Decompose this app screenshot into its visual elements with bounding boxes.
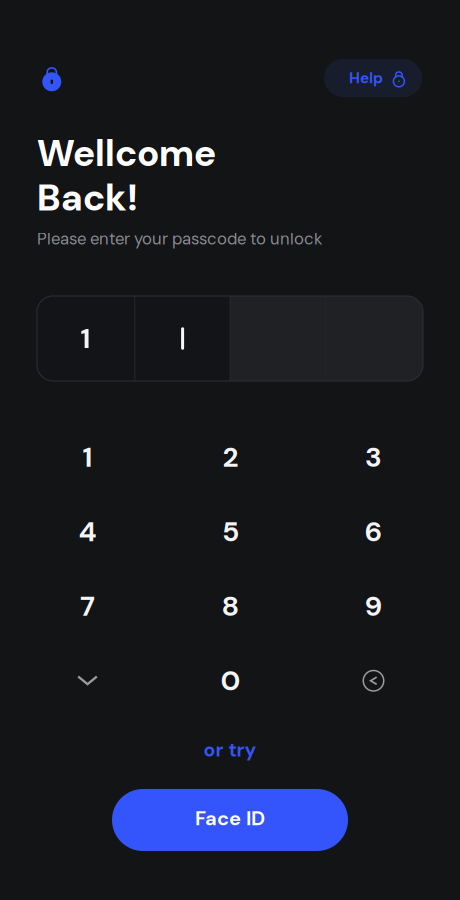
staticText: Please enter your passcode to unlock bbox=[37, 228, 322, 250]
button[interactable]: 4 bbox=[16, 494, 159, 569]
button[interactable]: 1 bbox=[16, 420, 159, 494]
button[interactable]: 9 bbox=[302, 569, 445, 643]
staticText: 1 bbox=[82, 439, 92, 475]
staticText: 3 bbox=[365, 439, 382, 475]
staticText: 5 bbox=[222, 513, 239, 550]
staticText: Face ID bbox=[195, 805, 265, 831]
staticText: 7 bbox=[80, 588, 95, 624]
staticText: 6 bbox=[364, 513, 382, 550]
staticText: 8 bbox=[221, 588, 239, 624]
button[interactable]: 2 bbox=[159, 420, 302, 494]
button[interactable]: Delete bbox=[302, 643, 445, 718]
button[interactable]: Hide keypad bbox=[16, 643, 159, 718]
staticText: 9 bbox=[364, 588, 382, 624]
button[interactable]: 0 bbox=[159, 643, 302, 718]
staticText: Back! bbox=[37, 173, 138, 222]
button[interactable]: 7 bbox=[16, 569, 159, 643]
button[interactable]: or try bbox=[0, 739, 460, 761]
button[interactable]: 8 bbox=[159, 569, 302, 643]
staticText: 0 bbox=[220, 662, 240, 699]
staticText: 2 bbox=[222, 439, 238, 475]
button[interactable]: Face ID bbox=[112, 789, 348, 851]
staticText: 1 bbox=[80, 320, 90, 357]
staticText: Help bbox=[349, 68, 383, 88]
button[interactable]: 6 bbox=[302, 494, 445, 569]
button[interactable]: Help bbox=[324, 59, 422, 97]
staticText: Wellcome bbox=[37, 129, 216, 178]
staticText: 4 bbox=[78, 513, 96, 550]
button[interactable]: 3 bbox=[302, 420, 445, 494]
staticText: or try bbox=[203, 737, 256, 763]
button[interactable]: 5 bbox=[159, 494, 302, 569]
